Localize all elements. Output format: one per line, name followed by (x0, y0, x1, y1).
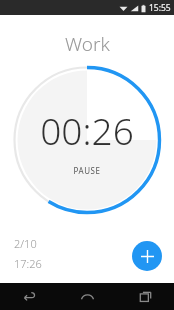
staticText: 17:26 (14, 256, 42, 271)
button[interactable]: Home (58, 283, 116, 310)
button[interactable]: Back (0, 283, 58, 310)
staticText: PAUSE (73, 165, 101, 176)
button[interactable]: 00:26 (12, 65, 162, 215)
button[interactable]: Recent apps (116, 283, 174, 310)
staticText: 15:55 (149, 2, 171, 14)
staticText: 2/10 (14, 236, 37, 251)
staticText: 00:26 (40, 105, 134, 155)
staticText: Work (65, 31, 110, 57)
button[interactable]: Add timer (132, 241, 162, 271)
